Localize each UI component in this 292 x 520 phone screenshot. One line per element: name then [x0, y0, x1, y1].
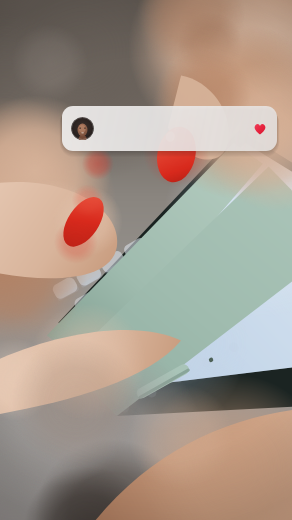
button[interactable]: Profile photo: [62, 106, 277, 151]
button[interactable]: Like: [251, 120, 268, 137]
other: Profile photo: [71, 117, 94, 140]
